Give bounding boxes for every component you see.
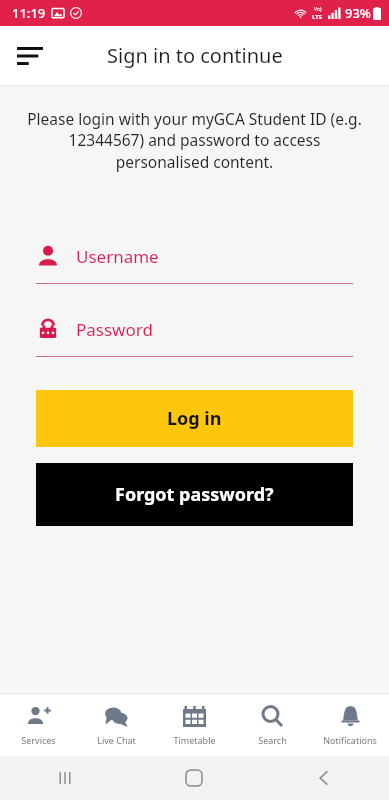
button[interactable]: Notifications xyxy=(311,694,389,756)
staticText: Username xyxy=(76,245,159,268)
other: Username xyxy=(36,244,60,268)
button[interactable]: Username xyxy=(36,237,353,284)
staticText: Please login with your myGCA Student ID … xyxy=(24,108,365,173)
staticText: 11:19 xyxy=(12,4,46,22)
staticText: Notifications xyxy=(323,734,377,746)
button[interactable]: Open navigation menu xyxy=(6,32,54,80)
staticText: 93% xyxy=(345,4,371,22)
staticText: Vo) xyxy=(314,6,322,13)
staticText: Log in xyxy=(167,406,222,431)
button[interactable]: Recent apps xyxy=(0,756,129,800)
button[interactable]: Log in xyxy=(36,390,353,447)
staticText: Services xyxy=(21,734,56,746)
staticText: Timetable xyxy=(173,734,216,746)
button[interactable]: Back xyxy=(259,756,389,800)
button[interactable]: Search xyxy=(233,694,311,756)
button[interactable]: Timetable xyxy=(155,694,233,756)
button[interactable]: Home xyxy=(129,756,259,800)
staticText: Live Chat xyxy=(97,734,136,746)
staticText: LTE xyxy=(312,13,323,21)
staticText: Sign in to continue xyxy=(107,42,283,69)
button[interactable]: Services xyxy=(0,694,77,756)
staticText: Password xyxy=(76,318,153,341)
other: Password xyxy=(36,317,60,341)
button[interactable]: Password xyxy=(36,310,353,357)
staticText: Search xyxy=(258,734,287,746)
staticText: Forgot password? xyxy=(115,482,274,507)
button[interactable]: Forgot password? xyxy=(36,463,353,526)
button[interactable]: Live Chat xyxy=(77,694,155,756)
